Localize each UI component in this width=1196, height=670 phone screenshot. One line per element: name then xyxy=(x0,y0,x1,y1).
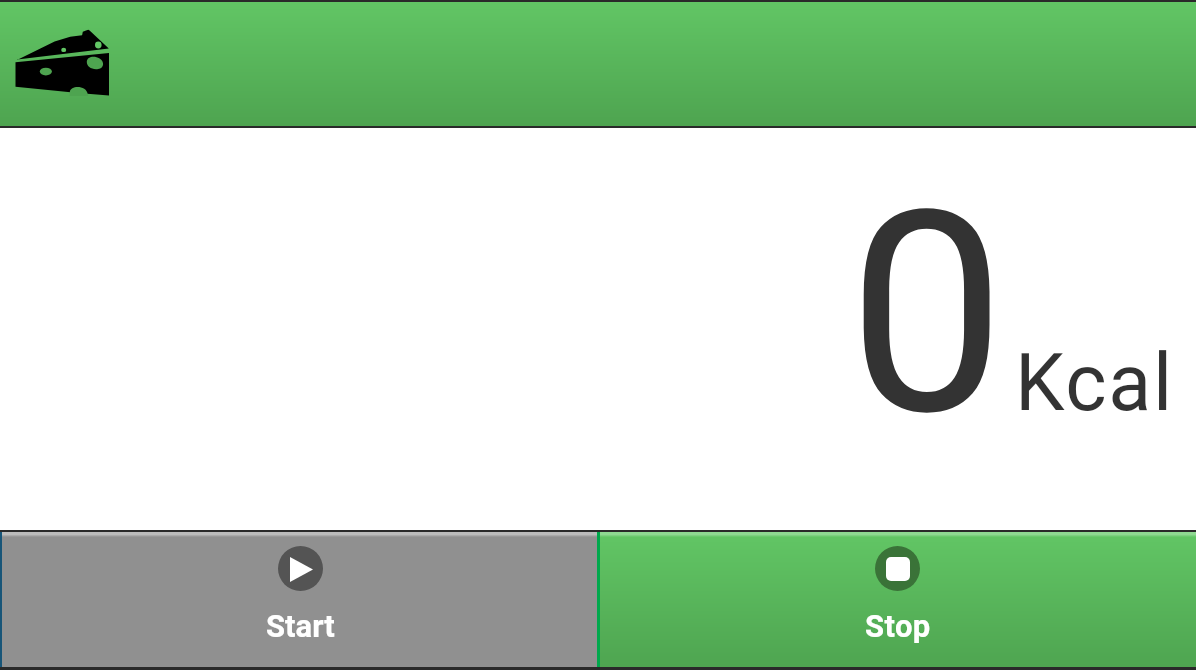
button[interactable]: Stop xyxy=(597,532,1196,670)
staticText: Kcal xyxy=(1015,337,1174,430)
staticText: Stop xyxy=(865,608,931,644)
staticText: 0 xyxy=(848,150,1006,478)
staticText: Start xyxy=(266,608,335,644)
button[interactable]: Start xyxy=(0,532,597,670)
button[interactable]: Cheese calorie counter home xyxy=(15,28,110,96)
